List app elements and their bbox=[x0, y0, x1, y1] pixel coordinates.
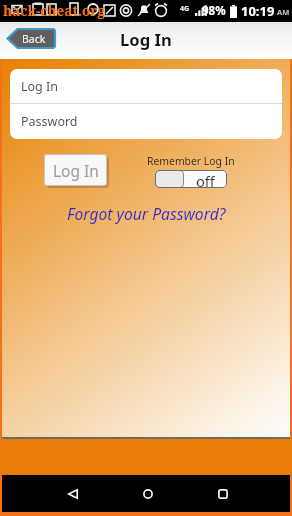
staticText: AM bbox=[277, 7, 290, 17]
staticText: Password bbox=[21, 113, 78, 130]
staticText: Remember Log In bbox=[147, 154, 235, 168]
button[interactable]: Password bbox=[10, 104, 282, 139]
button[interactable]: Log In bbox=[10, 69, 282, 103]
staticText: 10:19 bbox=[241, 2, 275, 20]
staticText: 98% bbox=[202, 3, 226, 19]
staticText: Forgot your Password? bbox=[67, 203, 226, 224]
staticText: off bbox=[196, 171, 215, 188]
button[interactable]: Forgot your Password? bbox=[67, 203, 226, 224]
button[interactable]: Log In bbox=[44, 154, 107, 186]
staticText: Log In bbox=[120, 28, 172, 51]
staticText: Log In bbox=[21, 78, 59, 95]
button[interactable]: Back bbox=[6, 28, 56, 49]
staticText: 4G bbox=[180, 4, 190, 14]
button[interactable]: Back bbox=[48, 475, 98, 512]
staticText: Back bbox=[22, 32, 46, 46]
button[interactable]: Home bbox=[123, 475, 173, 512]
button[interactable]: Recents bbox=[198, 475, 248, 512]
staticText: hack-cheat.org bbox=[3, 1, 105, 20]
button[interactable]: off bbox=[155, 170, 227, 188]
staticText: Log In bbox=[53, 160, 99, 181]
